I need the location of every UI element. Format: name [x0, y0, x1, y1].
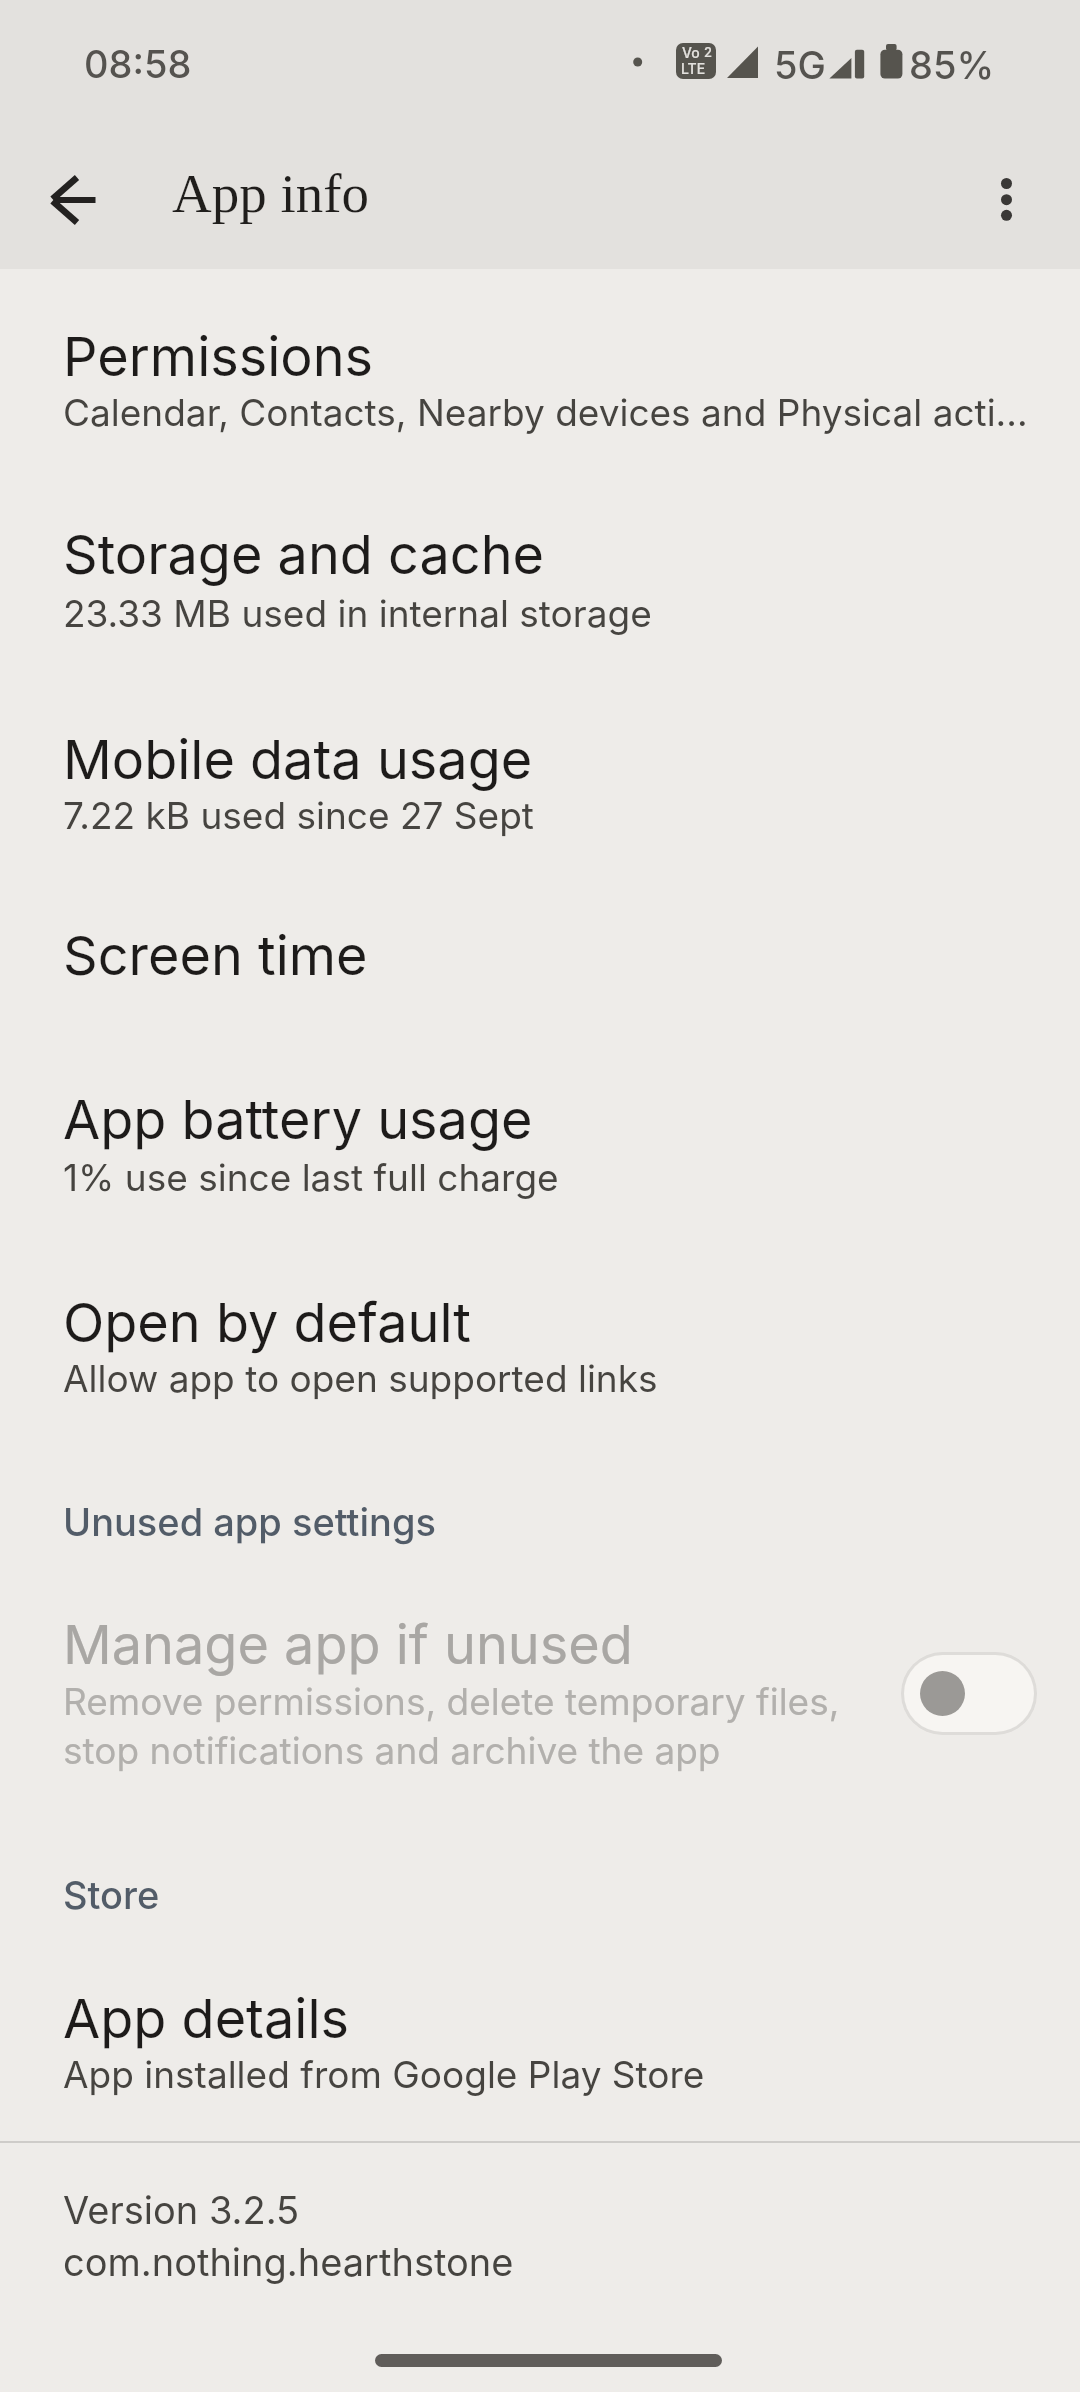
staticText: Unused app settings [63, 1499, 436, 1545]
staticText: Storage and cache [63, 522, 545, 587]
staticText: Store [63, 1872, 160, 1918]
staticText: com.nothing.hearthstone [63, 2239, 514, 2285]
staticText: Vo [682, 44, 700, 61]
staticText: 23.33 MB used in internal storage [63, 591, 652, 636]
button[interactable] [901, 1652, 1037, 1735]
staticText: Open by default [63, 1290, 471, 1355]
staticText: Permissions [63, 324, 374, 389]
button[interactable] [0, 1580, 1080, 1810]
button[interactable] [0, 694, 1080, 894]
staticText: Version 3.2.5 [63, 2187, 300, 2233]
staticText: App info [172, 163, 370, 224]
staticText: 7.22 kB used since 27 Sept [63, 793, 534, 838]
button[interactable] [26, 150, 126, 250]
staticText: Screen time [63, 923, 368, 988]
staticText: Allow app to open supported links [63, 1356, 658, 1401]
button[interactable] [0, 1955, 1080, 2142]
staticText: Mobile data usage [63, 727, 533, 792]
staticText: App installed from Google Play Store [63, 2052, 705, 2097]
button[interactable] [0, 292, 1080, 493]
button[interactable] [966, 159, 1046, 239]
staticText: App details [63, 1986, 350, 2051]
button[interactable] [0, 894, 1080, 1055]
staticText: Manage app if unused [63, 1612, 633, 1677]
staticText: Calendar, Contacts, Nearby devices and P… [63, 390, 1028, 435]
button[interactable] [0, 493, 1080, 694]
staticText: 08:58 [84, 41, 192, 87]
button[interactable] [0, 1055, 1080, 1256]
staticText: 85% [909, 42, 995, 88]
staticText: 1% use since last full charge [63, 1155, 559, 1200]
staticText: LTE [681, 60, 706, 77]
staticText: 2 [704, 44, 713, 60]
button[interactable] [0, 1256, 1080, 1457]
staticText: Remove permissions, delete temporary fil… [63, 1679, 840, 1773]
staticText: 5G [774, 42, 826, 88]
staticText: App battery usage [63, 1087, 533, 1152]
